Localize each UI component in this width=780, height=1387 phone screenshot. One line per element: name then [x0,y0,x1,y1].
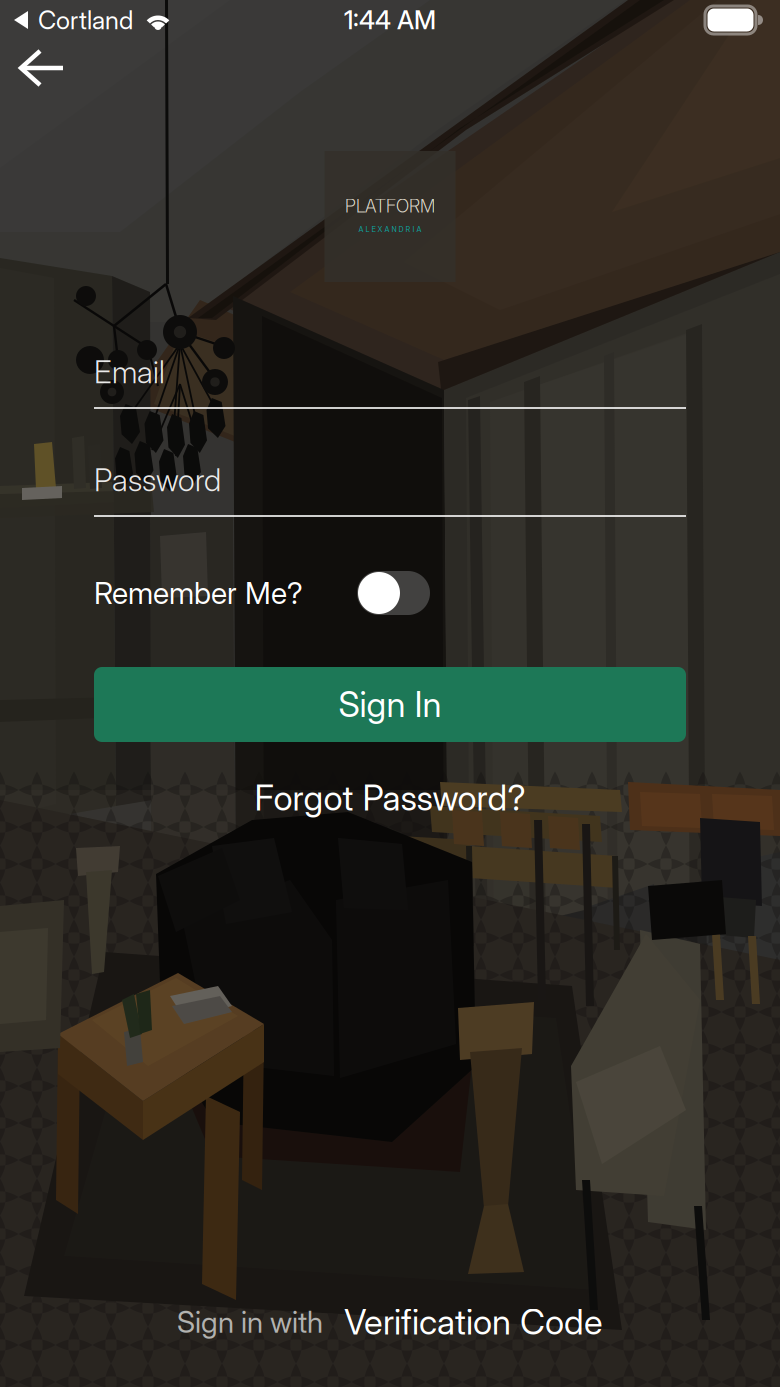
button[interactable]: Sign In [94,667,686,742]
staticText: Remember Me? [94,575,303,611]
button[interactable]: Sign in with [0,1289,780,1355]
staticText: Sign In [338,683,441,725]
button[interactable]: Remember Me? [94,569,686,617]
staticText: 1:44 AM [344,5,436,35]
staticText: Verification Code [344,1301,603,1343]
staticText: Email [94,353,165,390]
staticText: PLATFORM [345,195,435,217]
staticText: Cortland [38,5,133,35]
staticText: Forgot Password? [254,777,525,819]
staticText: A L E X A N D R I A [358,225,421,234]
staticText: Sign in with [177,1304,323,1340]
button[interactable]: Back [0,43,80,93]
button[interactable]: Forgot Password? [94,769,686,827]
staticText: Password [94,461,221,498]
